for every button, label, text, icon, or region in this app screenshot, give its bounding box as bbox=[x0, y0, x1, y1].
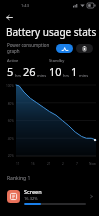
staticText: hrs bbox=[63, 73, 70, 78]
staticText: 5 bbox=[7, 64, 14, 79]
staticText: Battery usage stats bbox=[6, 25, 97, 39]
staticText: 7 bbox=[76, 162, 78, 166]
button[interactable]: Graph view bbox=[56, 44, 73, 53]
staticText: 1:43 bbox=[21, 3, 29, 8]
staticText: Screen bbox=[24, 188, 42, 195]
staticText: Active bbox=[7, 58, 19, 63]
other: Open details bbox=[89, 194, 94, 199]
staticText: hrs bbox=[15, 73, 22, 78]
staticText: 16.32% bbox=[24, 196, 38, 201]
staticText: 10 bbox=[49, 64, 62, 79]
staticText: 21 bbox=[47, 162, 51, 166]
staticText: 26 bbox=[23, 64, 36, 79]
staticText: mins bbox=[79, 73, 89, 78]
staticText: 20% bbox=[7, 154, 14, 158]
staticText: 2 bbox=[62, 162, 64, 166]
staticText: 16 bbox=[31, 162, 35, 166]
staticText: Ranking 1 bbox=[7, 175, 31, 182]
staticText: Standby bbox=[49, 58, 65, 63]
button[interactable]: Back bbox=[3, 11, 16, 24]
staticText: Now bbox=[89, 162, 96, 166]
staticText: 100% bbox=[5, 84, 14, 88]
button[interactable]: Battery list view bbox=[76, 44, 93, 53]
staticText: mins bbox=[37, 73, 47, 78]
staticText: 80% bbox=[7, 102, 14, 106]
staticText: Power consumption graph bbox=[7, 42, 56, 54]
staticText: 60% bbox=[7, 119, 14, 123]
staticText: 1 bbox=[71, 64, 78, 79]
staticText: 40% bbox=[7, 137, 14, 141]
staticText: 11 bbox=[16, 162, 20, 166]
button[interactable]: Screen bbox=[0, 186, 99, 207]
